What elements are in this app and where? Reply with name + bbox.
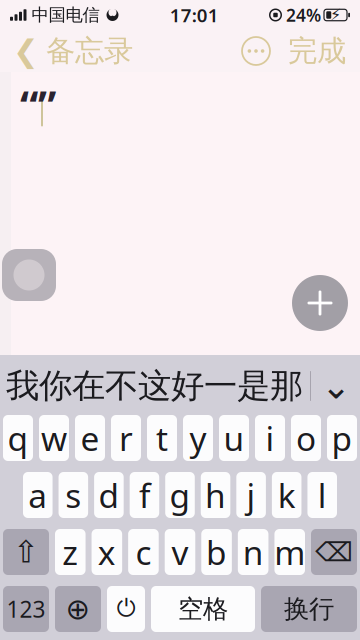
button[interactable]: v bbox=[165, 529, 195, 575]
button[interactable]: 换行 bbox=[261, 586, 357, 632]
button[interactable]: u bbox=[219, 415, 249, 461]
staticText: h bbox=[205, 473, 226, 517]
button[interactable]: o bbox=[291, 415, 321, 461]
staticText: q bbox=[7, 416, 28, 460]
staticText: k bbox=[278, 473, 296, 517]
staticText: ⏻ bbox=[116, 597, 135, 621]
button[interactable]: d bbox=[94, 472, 124, 518]
button[interactable]: p bbox=[327, 415, 357, 461]
staticText: ⌫ bbox=[315, 537, 353, 567]
button[interactable]: l bbox=[307, 472, 337, 518]
staticText: y bbox=[189, 416, 206, 460]
staticText: 我 bbox=[6, 365, 39, 406]
button[interactable]: x bbox=[92, 529, 122, 575]
button[interactable]: 那 bbox=[270, 363, 303, 409]
button[interactable]: z bbox=[55, 529, 86, 575]
staticText: n bbox=[243, 530, 264, 574]
button[interactable]: t bbox=[147, 415, 177, 461]
staticText: 换行 bbox=[284, 593, 334, 624]
staticText: 好 bbox=[171, 365, 204, 406]
staticText: 这 bbox=[138, 365, 171, 406]
staticText: c bbox=[135, 530, 151, 574]
staticText: r bbox=[119, 416, 133, 460]
button[interactable]: More options bbox=[235, 30, 277, 72]
button[interactable]: 在 bbox=[72, 363, 105, 409]
staticText: j bbox=[247, 473, 256, 517]
button[interactable]: s bbox=[59, 472, 88, 518]
button[interactable]: b bbox=[201, 529, 232, 575]
staticText: g bbox=[169, 473, 190, 517]
staticText: 备忘录 bbox=[46, 33, 133, 69]
staticText: ⌄ bbox=[321, 366, 351, 406]
button[interactable]: ⇧ bbox=[3, 529, 49, 575]
staticText: w bbox=[41, 416, 67, 460]
button[interactable]: a bbox=[23, 472, 53, 518]
staticText: o bbox=[296, 416, 316, 460]
button[interactable]: 我 bbox=[6, 363, 39, 409]
button[interactable]: ❮ bbox=[3, 28, 143, 74]
staticText: u bbox=[223, 416, 244, 460]
staticText: x bbox=[98, 530, 116, 574]
staticText: 你 bbox=[39, 365, 72, 406]
staticText: 17:01 bbox=[170, 3, 219, 27]
button[interactable]: y bbox=[183, 415, 213, 461]
staticText: 完成 bbox=[288, 33, 346, 69]
staticText: s bbox=[65, 473, 81, 517]
staticText: ❮ bbox=[13, 34, 39, 68]
button[interactable]: AssistiveTouch bbox=[1, 248, 57, 302]
staticText: a bbox=[28, 473, 47, 517]
button[interactable]: 不 bbox=[105, 363, 138, 409]
button[interactable]: h bbox=[201, 472, 230, 518]
button[interactable]: Dictation bbox=[107, 586, 145, 632]
staticText: ⇧ bbox=[13, 535, 39, 569]
staticText: f bbox=[139, 473, 150, 517]
button[interactable]: 你 bbox=[39, 363, 72, 409]
staticText: t bbox=[156, 416, 168, 460]
staticText: 不 bbox=[105, 365, 138, 406]
staticText: z bbox=[62, 530, 78, 574]
staticText: ⚡︎ bbox=[330, 6, 341, 24]
staticText: 24% bbox=[286, 3, 321, 26]
staticText: 是 bbox=[237, 365, 270, 406]
button[interactable]: i bbox=[255, 415, 285, 461]
button[interactable]: n bbox=[238, 529, 268, 575]
button[interactable]: ⊕ bbox=[55, 586, 101, 632]
button[interactable]: 123 bbox=[3, 586, 49, 632]
button[interactable]: k bbox=[272, 472, 301, 518]
staticText: “” bbox=[20, 78, 56, 133]
staticText: 空格 bbox=[178, 593, 228, 624]
button[interactable]: ⌫ bbox=[311, 529, 357, 575]
staticText: 123 bbox=[6, 594, 45, 624]
staticText: 在 bbox=[72, 365, 105, 406]
button[interactable]: e bbox=[75, 415, 105, 461]
staticText: i bbox=[265, 416, 274, 460]
staticText: e bbox=[80, 416, 99, 460]
button[interactable]: c bbox=[128, 529, 159, 575]
staticText: d bbox=[98, 473, 119, 517]
button[interactable]: g bbox=[165, 472, 195, 518]
button[interactable]: j bbox=[236, 472, 266, 518]
button[interactable]: Hide candidates bbox=[318, 363, 354, 409]
staticText: 一 bbox=[204, 365, 237, 406]
staticText: b bbox=[206, 530, 227, 574]
staticText: m bbox=[274, 530, 305, 574]
button[interactable]: r bbox=[111, 415, 141, 461]
button[interactable]: 一 bbox=[204, 363, 237, 409]
button[interactable]: f bbox=[130, 472, 159, 518]
button[interactable]: Add attachment bbox=[288, 271, 352, 335]
staticText: 那 bbox=[270, 365, 303, 406]
staticText: p bbox=[331, 416, 352, 460]
staticText: v bbox=[171, 530, 188, 574]
button[interactable]: w bbox=[39, 415, 69, 461]
button[interactable]: 完成 bbox=[277, 28, 357, 74]
button[interactable]: 这 bbox=[138, 363, 171, 409]
staticText: ⊕ bbox=[65, 592, 90, 626]
staticText: l bbox=[318, 473, 327, 517]
button[interactable]: q bbox=[3, 415, 33, 461]
button[interactable]: m bbox=[274, 529, 305, 575]
button[interactable]: 空格 bbox=[151, 586, 255, 632]
button[interactable]: 是 bbox=[237, 363, 270, 409]
staticText: 中国电信 bbox=[31, 4, 99, 26]
button[interactable]: 好 bbox=[171, 363, 204, 409]
